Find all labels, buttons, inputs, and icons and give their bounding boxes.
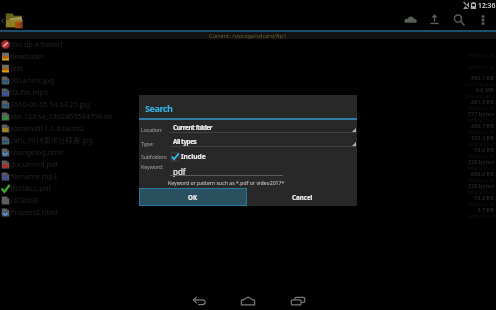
button[interactable]: LICENSE: [0, 194, 496, 206]
staticText: Include: [181, 152, 206, 161]
button[interactable]: Home: [231, 292, 265, 310]
staticText: 777 bytes: [467, 110, 494, 118]
staticText: newfolder: [10, 51, 45, 61]
button[interactable]: test: [0, 62, 496, 74]
button[interactable]: abc 123 sa_1362469584794.xls: [0, 110, 496, 122]
staticText: 153.3 KB: [470, 134, 494, 142]
button[interactable]: OK: [140, 189, 246, 205]
staticText: All types: [173, 137, 197, 146]
staticText: Keyword:: [141, 163, 163, 171]
staticText: Keyword or pattern such as *.pdf or vide…: [168, 179, 285, 186]
staticText: 3/09/14 11:37: [467, 214, 494, 218]
staticText: 3/09/14 11:35: [467, 202, 494, 206]
staticText: 12/01/13 04:53: [464, 82, 494, 86]
staticText: 668.0 KB: [470, 170, 494, 178]
staticText: 392.1 KB: [470, 74, 494, 82]
staticText: cars_1918要求仕様書.jpg: [10, 135, 93, 145]
staticText: pdf: [173, 166, 186, 177]
staticText: 3/09/14 11:37: [467, 118, 494, 122]
staticText: 128 bytes: [467, 158, 494, 166]
button[interactable]: newfolder: [0, 50, 496, 62]
staticText: 3/09/14 11:37: [467, 154, 494, 158]
staticText: Cancel: [292, 193, 313, 201]
staticText: Current folder: [173, 123, 213, 132]
staticText: 03-file.mp3: [10, 87, 48, 97]
staticText: 3/09/14 11:37: [467, 130, 494, 134]
button[interactable]: Include subfolders: [171, 152, 206, 161]
button[interactable]: Upload: [422, 9, 446, 30]
staticText: 3/09/14 11:36: [467, 53, 494, 59]
staticText: 3/09/14 12:34: [467, 178, 494, 182]
button[interactable]: 2010-06-05 14.03.25.jpg: [0, 98, 496, 110]
button[interactable]: changelog.html: [0, 146, 496, 158]
staticText: 12:36: [478, 1, 496, 10]
button[interactable]: Cancel: [247, 188, 357, 206]
staticText: adminutil-1.1.8.tar.bz2: [10, 123, 85, 133]
staticText: 3/09/14 11:37: [467, 142, 494, 146]
staticText: LICENSE: [10, 195, 39, 205]
staticText: 128 bytes: [467, 182, 494, 190]
staticText: changelog.html: [10, 147, 63, 157]
staticText: 3.7 KB: [477, 206, 494, 214]
staticText: 15.2 KB: [473, 194, 494, 202]
staticText: Process2.html: [10, 207, 58, 217]
staticText: Subfolders:: [141, 153, 167, 160]
staticText: Type:: [141, 140, 154, 148]
staticText: 3/09/14 11:36: [467, 65, 494, 71]
staticText: 369.7 KB: [470, 122, 494, 130]
staticText: 3/09/14 11:35: [467, 190, 494, 194]
staticText: OK: [188, 193, 198, 201]
button[interactable]: 03-file.mp3: [0, 86, 496, 98]
staticText: 3/09/14 11:35: [467, 166, 494, 170]
staticText: test: [10, 63, 23, 73]
button[interactable]: Process2.html: [0, 206, 496, 218]
button[interactable]: INSTALL.pdf: [0, 182, 496, 194]
staticText: 2010-06-05 14.03.25.jpg: [10, 99, 91, 109]
button[interactable]: All types: [170, 136, 356, 147]
staticText: Search: [145, 102, 173, 115]
button[interactable]: adminutil-1.1.8.tar.bz2: [0, 122, 496, 134]
staticText: 12/01/13 04:53: [464, 94, 494, 98]
button[interactable]: document.pdf: [0, 158, 496, 170]
staticText: 4.0 MB: [475, 86, 494, 94]
button[interactable]: cars_1918要求仕様書.jpg: [0, 134, 496, 146]
staticText: 3/09/14 11:37: [467, 106, 494, 110]
button[interactable]: Up one level: [0, 8, 26, 30]
button[interactable]: Search: [447, 9, 471, 30]
staticText: INSTALL.pdf: [10, 183, 51, 193]
button[interactable]: More options: [471, 9, 495, 30]
staticText: Location:: [141, 126, 163, 134]
staticText: [Go up a folder]: [10, 39, 63, 49]
button[interactable]: Current folder: [170, 122, 356, 133]
staticText: 281.3 KB: [470, 98, 494, 106]
staticText: 001a-test.jpg: [10, 75, 54, 85]
staticText: 15.6 KB: [473, 146, 494, 154]
staticText: Current: /storage/sdcard/ftp1: [209, 32, 287, 39]
button[interactable]: Cloud storage: [398, 9, 422, 30]
button[interactable]: Back: [182, 292, 216, 310]
staticText: abc 123 sa_1362469584794.xls: [10, 111, 113, 121]
staticText: filename.mp3: [10, 171, 57, 181]
button[interactable]: [Go up a folder]: [0, 38, 496, 50]
button[interactable]: 001a-test.jpg: [0, 74, 496, 86]
button[interactable]: filename.mp3: [0, 170, 496, 182]
staticText: document.pdf: [10, 159, 58, 169]
button[interactable]: Recent apps: [281, 292, 315, 310]
